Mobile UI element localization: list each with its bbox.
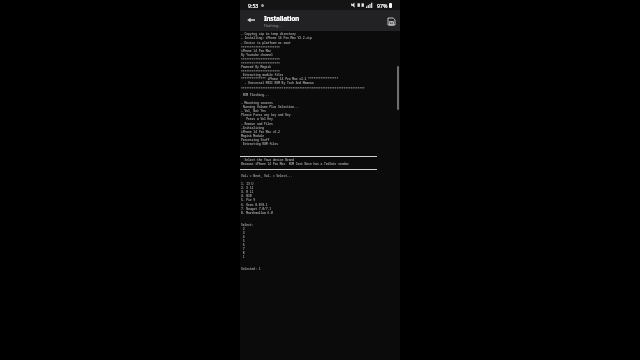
staticText: - Mounting sources: [241, 101, 273, 105]
button[interactable]: Back: [240, 10, 261, 30]
staticText: Powered By Magisk: [241, 65, 272, 69]
staticText: ****************************************…: [241, 87, 365, 91]
staticText: - Device is platform as root: [241, 41, 291, 45]
staticText: **********************: [241, 46, 280, 50]
staticText: **********************: [241, 58, 280, 62]
staticText: 2: [241, 227, 245, 231]
staticText: **********************: [241, 62, 280, 66]
staticText: Select:: [241, 223, 254, 227]
staticText: Because iPhone 14 Pro Max ROM Cast Base …: [241, 162, 349, 166]
staticText: 8: [241, 251, 245, 255]
staticText: 4: [241, 235, 245, 239]
staticText: Extracting module files: [241, 73, 284, 77]
staticText: Selected: 1: [241, 267, 261, 271]
staticText: Magisk Module: [241, 134, 264, 138]
staticText: **********************: [241, 70, 280, 74]
staticText: 4. N10: [241, 194, 252, 198]
staticText: Flashing...: [264, 23, 281, 28]
staticText: 7. Nougat 7.0/7.1: [241, 207, 272, 211]
staticText: By Youtube channel: [241, 53, 273, 57]
staticText: iPhone 14 Pro Max v2.2: [241, 130, 280, 134]
staticText: -Initializing: [241, 126, 264, 130]
staticText: Press a Vol Key: [241, 117, 273, 121]
staticText: 1. 13 U: [241, 182, 254, 186]
button[interactable]: Save: [383, 11, 400, 31]
staticText: - Installing: iPhone 14 Pro Max V2.2.zip: [241, 36, 312, 40]
staticText: 5: [241, 239, 245, 243]
staticText: Extracting ROM files: [241, 142, 279, 146]
staticText: iPhone 14 Pro Max: [241, 49, 272, 53]
staticText: Select the Your device Brand: [241, 158, 294, 162]
staticText: 2. S 12: [241, 186, 254, 190]
staticText: Processing Stuff: [241, 138, 270, 142]
staticText: 3. R 11: [241, 190, 254, 194]
staticText: ************** iPhone 14 Pro Max v2.2 **…: [241, 77, 339, 81]
staticText: 5. Pie 9: [241, 198, 256, 202]
staticText: - Copying zip to temp directory: [241, 32, 296, 36]
staticText: 97%: [377, 2, 388, 9]
staticText: 6. Oreo 8.0/8.1: [241, 203, 268, 207]
staticText: ROM Flashing...: [241, 93, 270, 97]
staticText: Vol+ = Next, Vol- = Select...: [241, 174, 293, 178]
staticText: Installation: [264, 14, 300, 23]
staticText: Running Volume Plus Selection...: [241, 105, 300, 109]
staticText: - Universal MIUI ROM By Tech And Mamnoo: [241, 81, 314, 85]
staticText: 8. Marshmallow 6.0: [241, 211, 273, 215]
staticText: 7: [241, 247, 245, 251]
staticText: 3: [241, 231, 245, 235]
staticText: Please Press any key and Key: [241, 113, 291, 117]
staticText: - Remove and Files: [241, 122, 273, 126]
staticText: - Vol, Not Yes: [241, 109, 266, 113]
staticText: 9:53: [248, 2, 259, 9]
staticText: 1: [241, 255, 245, 259]
staticText: 6: [241, 243, 245, 247]
